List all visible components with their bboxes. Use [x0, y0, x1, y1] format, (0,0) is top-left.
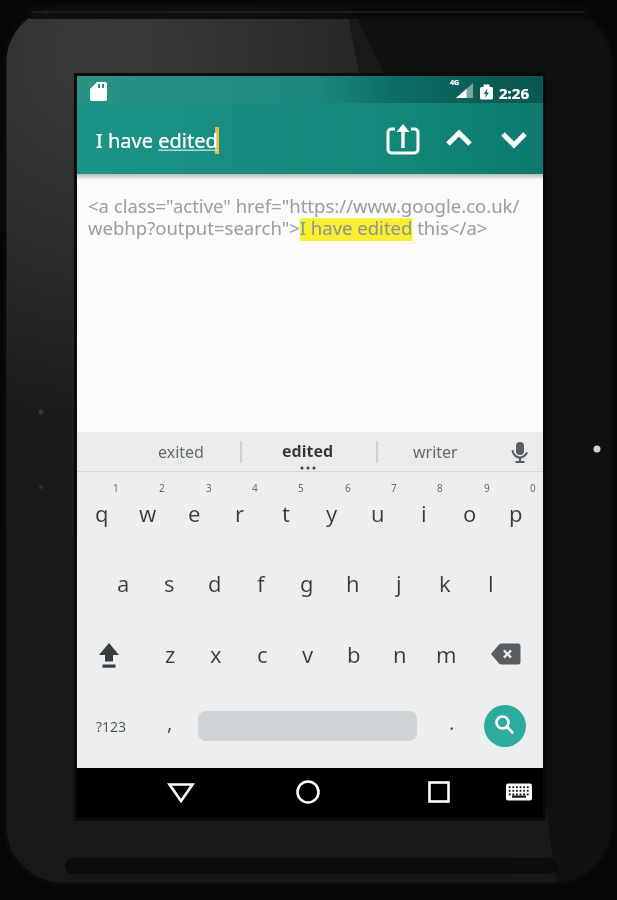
- button[interactable]: w: [125, 493, 171, 533]
- staticText: h: [346, 568, 360, 598]
- staticText: .: [449, 709, 455, 736]
- staticText: e: [188, 498, 201, 528]
- staticText: ,: [167, 709, 173, 736]
- button[interactable]: [384, 122, 422, 156]
- button[interactable]: .: [429, 702, 475, 742]
- button[interactable]: b: [331, 634, 377, 674]
- staticText: q: [95, 498, 109, 528]
- staticText: v: [302, 639, 314, 669]
- button[interactable]: [163, 776, 199, 808]
- button[interactable]: h: [330, 563, 376, 603]
- button[interactable]: q: [79, 493, 125, 533]
- button[interactable]: o: [447, 493, 493, 533]
- button[interactable]: d: [192, 563, 238, 603]
- staticText: i: [421, 498, 427, 528]
- staticText: a: [117, 568, 130, 598]
- button[interactable]: [290, 776, 326, 808]
- staticText: p: [509, 498, 523, 528]
- button[interactable]: y: [309, 493, 355, 533]
- staticText: m: [436, 639, 457, 669]
- staticText: y: [326, 498, 338, 528]
- button[interactable]: x: [193, 634, 239, 674]
- button[interactable]: c: [239, 634, 285, 674]
- staticText: 2: [159, 481, 165, 495]
- staticText: o: [463, 498, 477, 528]
- button[interactable]: a: [100, 563, 146, 603]
- button[interactable]: [485, 634, 529, 674]
- staticText: s: [164, 568, 175, 598]
- button[interactable]: s: [146, 563, 192, 603]
- button[interactable]: u: [355, 493, 401, 533]
- staticText: ?123: [96, 717, 127, 736]
- staticText: exited: [158, 441, 204, 463]
- button[interactable]: ,: [147, 702, 193, 742]
- staticText: 3: [206, 481, 212, 495]
- staticText: 0: [530, 481, 536, 495]
- staticText: l: [488, 568, 494, 598]
- button[interactable]: edited: [253, 435, 363, 467]
- staticText: 4G: [450, 78, 460, 88]
- button[interactable]: n: [377, 634, 423, 674]
- staticText: t: [282, 498, 290, 528]
- staticText: <a class="active" href="https://www.goog…: [88, 193, 540, 241]
- staticText: j: [396, 568, 402, 598]
- button[interactable]: [421, 776, 457, 808]
- button[interactable]: t: [263, 493, 309, 533]
- staticText: k: [439, 568, 451, 598]
- button[interactable]: p: [493, 493, 539, 533]
- staticText: u: [371, 498, 385, 528]
- staticText: f: [257, 568, 265, 598]
- button[interactable]: j: [376, 563, 422, 603]
- button[interactable]: i: [401, 493, 447, 533]
- button[interactable]: [497, 124, 531, 154]
- button[interactable]: e: [171, 493, 217, 533]
- button[interactable]: ?123: [88, 706, 134, 746]
- staticText: edited: [282, 440, 334, 462]
- button[interactable]: writer: [380, 436, 490, 468]
- staticText: 2:26: [499, 83, 529, 103]
- button[interactable]: v: [285, 634, 331, 674]
- button[interactable]: m: [423, 634, 469, 674]
- staticText: d: [208, 568, 222, 598]
- staticText: c: [257, 639, 268, 669]
- staticText: I have edited: [96, 127, 218, 154]
- button[interactable]: k: [422, 563, 468, 603]
- staticText: x: [210, 639, 222, 669]
- button[interactable]: I have edited: [96, 124, 226, 156]
- staticText: 9: [484, 481, 490, 495]
- button[interactable]: [484, 705, 526, 747]
- button[interactable]: f: [238, 563, 284, 603]
- staticText: 5: [298, 481, 304, 495]
- staticText: 1: [113, 481, 119, 495]
- staticText: r: [235, 498, 245, 528]
- button[interactable]: z: [147, 634, 193, 674]
- staticText: w: [139, 498, 157, 528]
- staticText: b: [347, 639, 361, 669]
- button[interactable]: g: [284, 563, 330, 603]
- staticText: z: [165, 639, 176, 669]
- staticText: 8: [437, 481, 443, 495]
- staticText: g: [300, 568, 314, 598]
- staticText: 6: [345, 481, 351, 495]
- button[interactable]: r: [217, 493, 263, 533]
- button[interactable]: [502, 778, 536, 806]
- button[interactable]: [442, 124, 476, 154]
- staticText: 4: [252, 481, 258, 495]
- staticText: 7: [391, 481, 397, 495]
- button[interactable]: [505, 438, 535, 468]
- staticText: writer: [413, 441, 458, 463]
- button[interactable]: exited: [126, 436, 236, 468]
- staticText: n: [393, 639, 407, 669]
- button[interactable]: l: [468, 563, 514, 603]
- button[interactable]: [87, 634, 131, 674]
